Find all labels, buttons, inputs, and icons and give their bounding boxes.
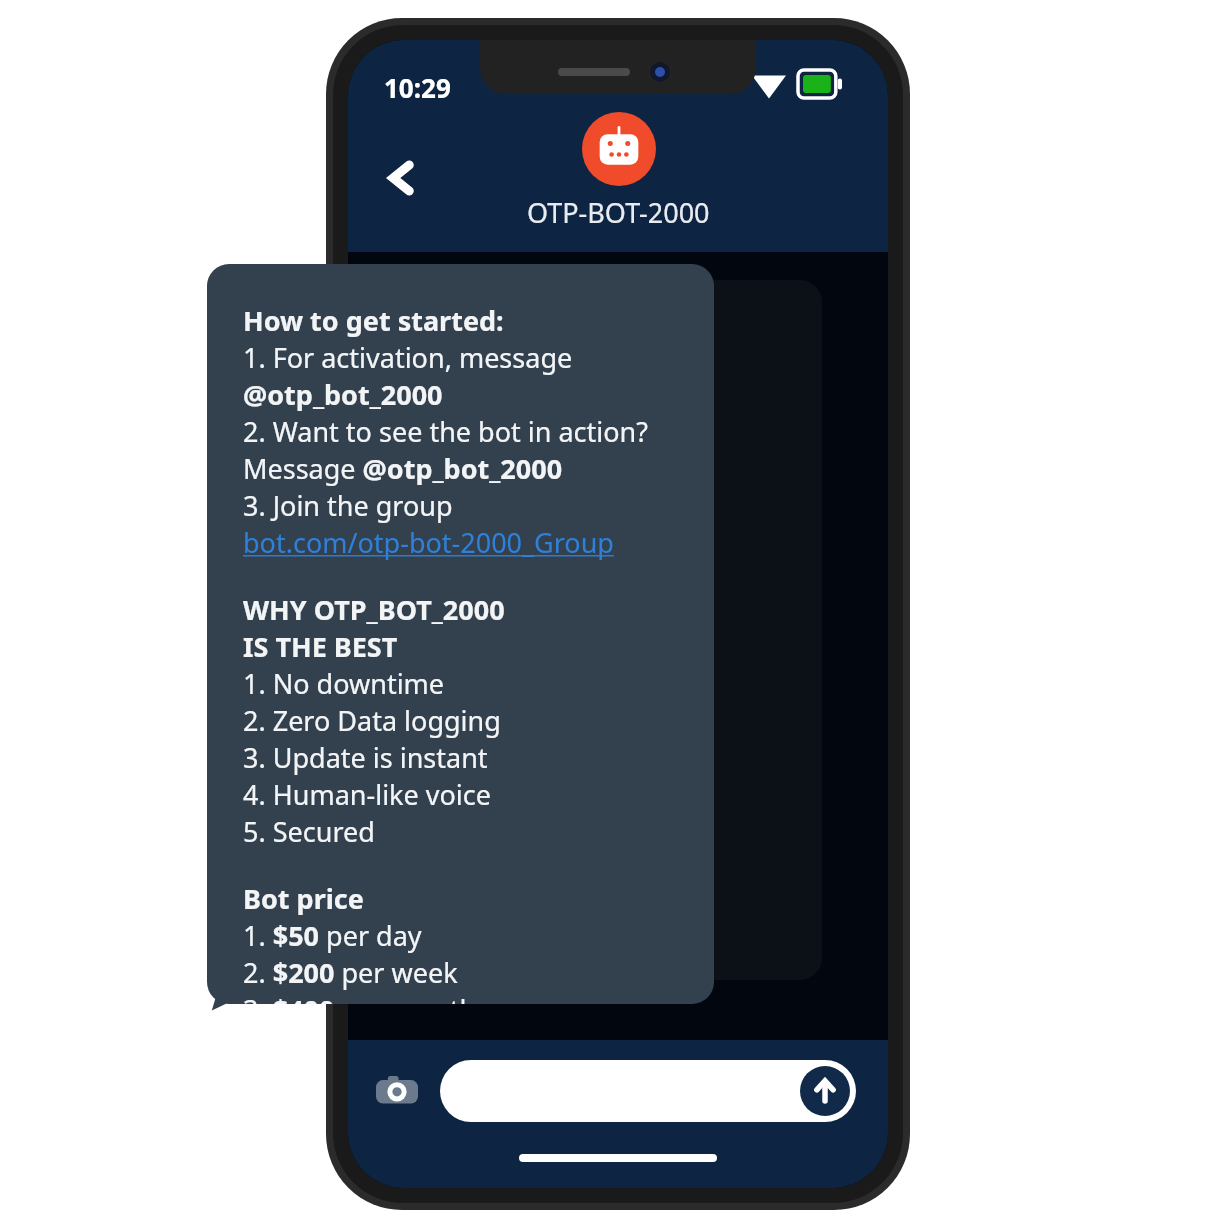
staticText: WHY OTP_BOT_2000: [243, 591, 505, 628]
staticText: 3. $400 per month: [243, 991, 477, 1004]
button[interactable]: Back: [374, 150, 430, 206]
staticText: 2. $200 per week: [243, 954, 458, 991]
staticText: 1. For activation, message: [243, 339, 573, 376]
button[interactable]: Send: [440, 1060, 856, 1122]
button[interactable]: How to get started:: [207, 264, 714, 1004]
button[interactable]: Send: [800, 1066, 850, 1116]
button[interactable]: OTP-BOT-2000: [527, 112, 710, 231]
staticText: How to get started:: [243, 302, 504, 339]
staticText: 3. Update is instant: [243, 739, 488, 776]
staticText: Message @otp_bot_2000: [243, 450, 563, 487]
button[interactable]: Camera: [374, 1068, 420, 1114]
staticText: bot.com/otp-bot-2000_Group: [243, 524, 614, 561]
staticText: Bot price: [243, 880, 364, 917]
button[interactable]: bot.com/otp-bot-2000_Group: [243, 524, 614, 561]
staticText: IS THE BEST: [243, 628, 398, 665]
staticText: 2. Zero Data logging: [243, 702, 501, 739]
staticText: 1. $50 per day: [243, 917, 422, 954]
staticText: 10:29: [384, 70, 451, 105]
staticText: @otp_bot_2000: [243, 376, 443, 413]
staticText: 1. No downtime: [243, 665, 445, 702]
staticText: OTP-BOT-2000: [527, 194, 710, 231]
staticText: 3. Join the group: [243, 487, 453, 524]
staticText: 5. Secured: [243, 813, 375, 850]
staticText: 2. Want to see the bot in action?: [243, 413, 648, 450]
staticText: 4. Human-like voice: [243, 776, 491, 813]
